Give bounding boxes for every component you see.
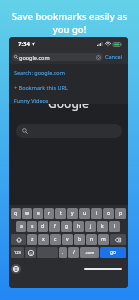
staticText: + Bookmark this URL: [14, 84, 68, 91]
staticText: z: [31, 236, 34, 243]
staticText: y: [71, 210, 74, 217]
staticText: Cancel: [105, 53, 123, 60]
button[interactable]: y: [67, 208, 78, 219]
button[interactable]: i: [91, 208, 102, 219]
button[interactable]: u: [79, 208, 90, 219]
button[interactable]: j: [85, 221, 96, 232]
button[interactable]: a: [16, 221, 26, 232]
staticText: q: [14, 210, 18, 217]
staticText: .: [62, 249, 64, 256]
staticText: k: [101, 223, 104, 230]
staticText: p: [119, 210, 123, 217]
button[interactable]: w: [22, 208, 32, 219]
staticText: Google: [48, 95, 89, 111]
button[interactable]: .com: [80, 247, 99, 258]
staticText: d: [41, 223, 45, 230]
button[interactable]: c: [50, 234, 61, 245]
staticText: f: [54, 223, 56, 230]
button[interactable]: google.com: [12, 53, 103, 61]
staticText: i: [96, 210, 98, 217]
button[interactable]: Emoji: [25, 247, 36, 258]
button[interactable]: b: [74, 234, 85, 245]
button[interactable]: f: [49, 221, 60, 232]
button[interactable]: r: [44, 208, 54, 219]
button[interactable]: p: [115, 208, 126, 219]
staticText: h: [77, 223, 81, 230]
button[interactable]: + Bookmark this URL: [9, 83, 128, 92]
button[interactable]: [16, 124, 122, 138]
button[interactable]: g: [61, 221, 72, 232]
button[interactable]: m: [98, 234, 109, 245]
button[interactable]: 123: [11, 247, 24, 258]
staticText: s: [31, 223, 34, 230]
button[interactable]: go: [100, 247, 126, 258]
staticText: u: [83, 210, 87, 217]
staticText: Funny Videos: [14, 97, 49, 104]
button[interactable]: .: [59, 247, 67, 258]
staticText: j: [90, 223, 92, 230]
button[interactable]: d: [38, 221, 48, 232]
staticText: 7:34: [18, 40, 30, 48]
button[interactable]: Change keyboard: [11, 264, 21, 274]
button[interactable]: /: [68, 247, 79, 258]
button[interactable]: t: [55, 208, 66, 219]
staticText: /: [73, 249, 75, 256]
button[interactable]: l: [109, 221, 120, 232]
staticText: x: [42, 236, 45, 243]
staticText: n: [90, 236, 94, 243]
staticText: g: [65, 223, 69, 230]
staticText: google.com: [19, 54, 50, 61]
staticText: Save bookmarks easily as you go!: [0, 10, 139, 36]
staticText: v: [66, 236, 69, 243]
staticText: .com: [85, 250, 95, 255]
staticText: Search: google.com: [14, 69, 65, 76]
staticText: l: [114, 223, 116, 230]
button[interactable]: h: [73, 221, 84, 232]
button[interactable]: z: [27, 234, 37, 245]
button[interactable]: v: [62, 234, 73, 245]
button[interactable]: Backspace: [110, 234, 126, 245]
button[interactable]: Funny Videos: [9, 96, 128, 105]
button[interactable]: e: [33, 208, 43, 219]
staticText: w: [25, 210, 29, 217]
button[interactable]: q: [11, 208, 21, 219]
staticText: c: [54, 236, 57, 243]
staticText: 123: [14, 250, 21, 255]
button[interactable]: s: [27, 221, 37, 232]
button[interactable]: n: [86, 234, 97, 245]
button[interactable]: Clear: [96, 55, 101, 60]
staticText: go: [110, 249, 117, 256]
staticText: e: [37, 210, 40, 217]
button[interactable]: x: [38, 234, 49, 245]
staticText: t: [60, 210, 62, 217]
staticText: a: [20, 223, 23, 230]
staticText: o: [107, 210, 111, 217]
staticText: r: [48, 210, 51, 217]
button[interactable]: k: [97, 221, 108, 232]
button[interactable]: o: [103, 208, 114, 219]
button[interactable]: Cancel: [103, 52, 125, 61]
staticText: b: [78, 236, 82, 243]
staticText: m: [101, 236, 106, 243]
button[interactable]: Search: google.com: [9, 68, 128, 77]
button[interactable]: Shift: [11, 234, 26, 245]
